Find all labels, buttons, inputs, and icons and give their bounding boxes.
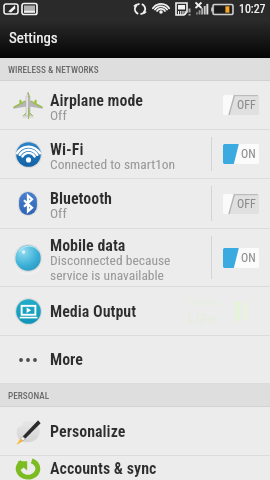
staticText: LiFe — [187, 308, 218, 325]
staticText: Airplane mode — [50, 91, 144, 110]
staticText: Bluetooth — [50, 189, 112, 208]
staticText: OFF — [237, 197, 256, 211]
button[interactable]: Bluetooth — [0, 179, 270, 228]
other: Accounts and sync — [14, 456, 42, 480]
staticText: Off — [50, 205, 67, 221]
button[interactable]: Turn off — [223, 248, 259, 268]
other: Mobile data — [14, 244, 42, 272]
staticText: Settings — [9, 29, 58, 47]
staticText: Mobile data — [50, 236, 126, 255]
button[interactable]: Mobile data — [0, 229, 270, 286]
staticText: OFF — [237, 98, 256, 112]
button[interactable]: More — [0, 336, 270, 383]
staticText: Disconnected because service is unavaila… — [50, 252, 171, 283]
button[interactable]: Airplane mode — [0, 81, 270, 129]
other: Airplane mode — [13, 90, 43, 120]
button[interactable]: Turn on — [223, 194, 259, 214]
other: Wi-Fi — [15, 141, 42, 168]
button[interactable]: Turn on — [223, 95, 259, 115]
staticText: More — [50, 350, 83, 369]
staticText: ON — [241, 251, 256, 265]
staticText: Off — [50, 107, 67, 123]
staticText: ON — [241, 147, 256, 161]
button[interactable]: Turn off — [223, 144, 259, 164]
other: Personalize — [14, 417, 42, 445]
button[interactable]: Accounts and sync — [0, 456, 270, 480]
staticText: DIGITAL — [187, 297, 224, 308]
other: Bluetooth — [18, 191, 38, 216]
button[interactable]: Wi-Fi — [0, 130, 270, 178]
other: More — [16, 356, 40, 364]
staticText: 10:27 — [239, 2, 266, 16]
staticText: Connected to smart1on — [50, 156, 176, 172]
staticText: Personalize — [50, 422, 126, 441]
button[interactable]: Personalize — [0, 407, 270, 455]
staticText: PERSONAL — [8, 390, 50, 401]
button[interactable]: DIGITAL — [0, 287, 270, 335]
staticText: Wi-Fi — [50, 140, 84, 159]
staticText: Media Output — [50, 302, 137, 321]
other: Media Output — [15, 298, 42, 325]
staticText: WIRELESS & NETWORKS — [8, 64, 99, 75]
staticText: Accounts & sync — [50, 459, 157, 478]
